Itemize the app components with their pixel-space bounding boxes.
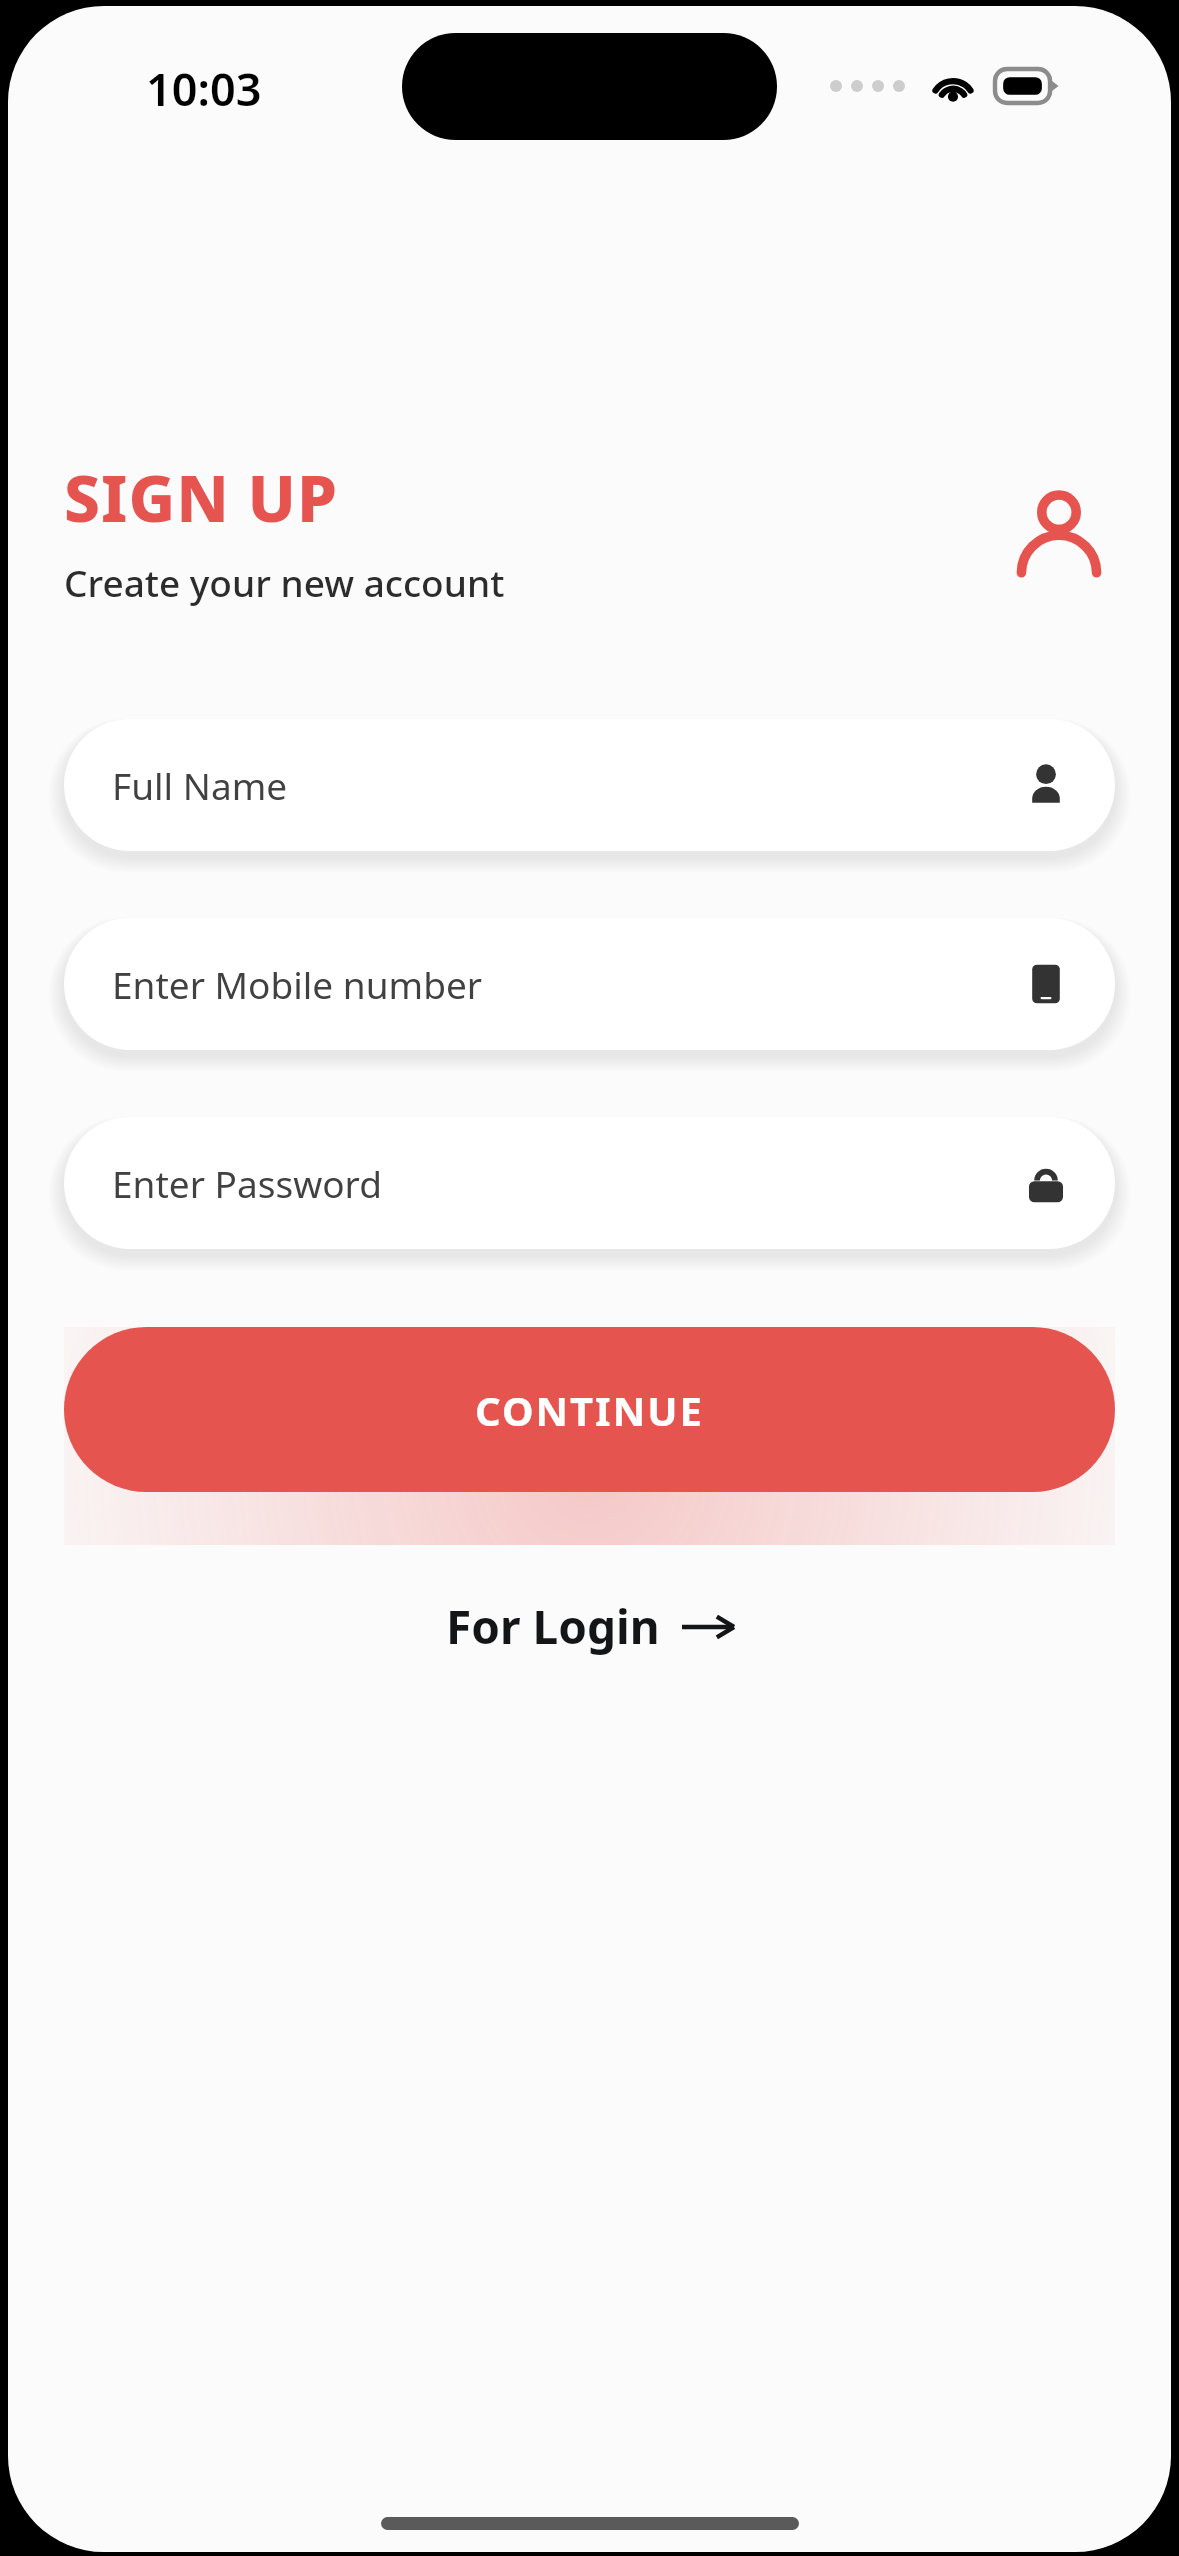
staticText: 10:03 bbox=[146, 58, 262, 119]
button[interactable]: Enter Mobile number bbox=[64, 918, 1115, 1050]
button[interactable]: Account bbox=[1003, 475, 1115, 587]
staticText: Enter Password bbox=[112, 1158, 1023, 1208]
button[interactable]: For Login bbox=[424, 1581, 756, 1672]
staticText: Enter Mobile number bbox=[112, 959, 1023, 1009]
staticText: For Login bbox=[446, 1595, 660, 1658]
staticText: CONTINUE bbox=[475, 1383, 704, 1437]
button[interactable]: Enter Password bbox=[64, 1117, 1115, 1249]
button[interactable]: Full Name bbox=[64, 719, 1115, 851]
staticText: Full Name bbox=[112, 760, 1023, 810]
button[interactable]: CONTINUE bbox=[64, 1327, 1115, 1492]
staticText: SIGN UP bbox=[64, 454, 339, 541]
staticText: Create your new account bbox=[64, 557, 505, 607]
